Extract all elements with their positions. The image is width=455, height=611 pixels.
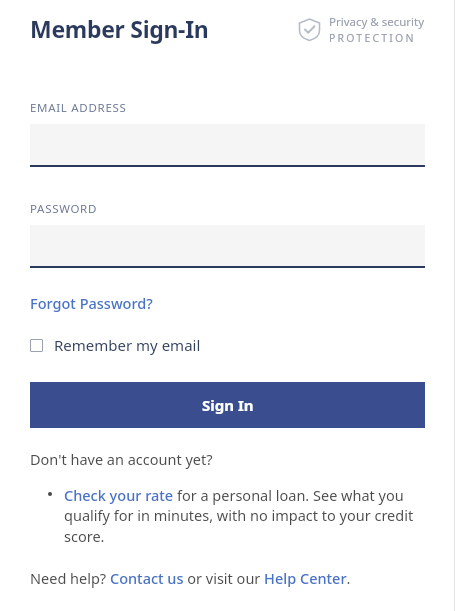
staticText: EMAIL ADDRESS [30, 100, 127, 116]
staticText: Need help? Contact us or visit our Help … [30, 568, 351, 588]
button[interactable]: Need help? Contact us or visit our Help … [30, 568, 351, 588]
staticText: Privacy & security [329, 14, 425, 30]
staticText: PASSWORD [30, 201, 98, 217]
button[interactable]: Check your rate for a personal loan. See… [64, 485, 419, 547]
button[interactable]: Sign In [30, 382, 425, 428]
button[interactable]: Forgot Password? [30, 291, 153, 315]
button[interactable] [30, 124, 425, 167]
staticText: Member Sign-In [30, 13, 209, 44]
staticText: Sign In [202, 395, 254, 415]
staticText: Remember my email [54, 335, 201, 355]
button[interactable] [30, 225, 425, 268]
staticText: Forgot Password? [30, 293, 153, 313]
staticText: Check your rate for a personal loan. See… [64, 485, 419, 547]
button[interactable]: Privacy and security protection [295, 12, 427, 47]
staticText: PROTECTION [329, 31, 416, 45]
button[interactable]: Remember my email [30, 332, 209, 358]
staticText: Don't have an account yet? [30, 449, 213, 469]
